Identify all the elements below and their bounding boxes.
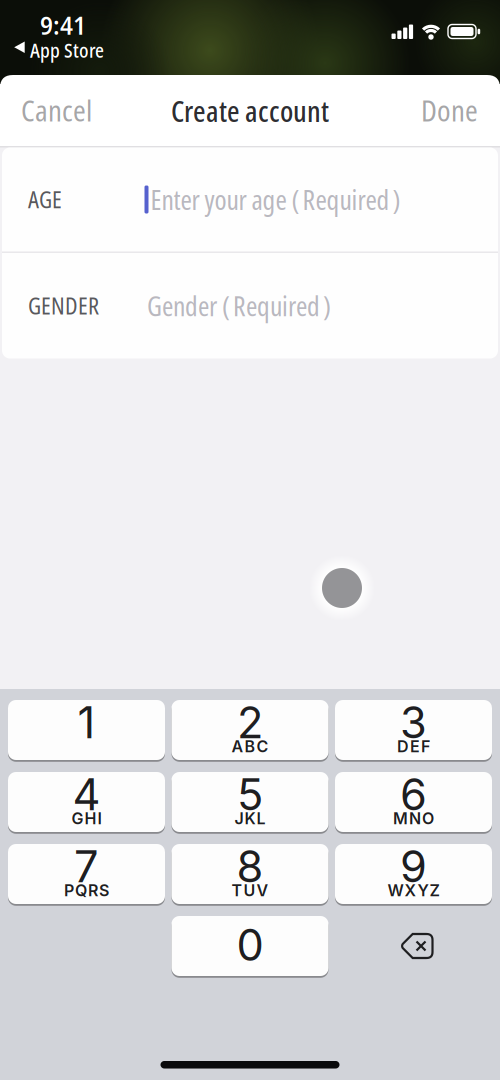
staticText: AGE — [28, 184, 62, 215]
button[interactable]: 5 — [171, 772, 328, 832]
staticText: 8 — [236, 840, 263, 893]
staticText: 7 — [74, 840, 99, 893]
button[interactable]: AGE — [2, 147, 498, 251]
staticText: Cancel — [21, 91, 92, 130]
staticText: 5 — [237, 768, 263, 821]
button[interactable]: Delete — [335, 916, 492, 976]
staticText: 0 — [236, 919, 263, 971]
button[interactable]: 7 — [8, 844, 165, 904]
button[interactable]: 3 — [335, 700, 492, 760]
staticText: 9:41 — [40, 7, 86, 42]
button[interactable]: App Store — [0, 38, 110, 58]
staticText: T U V — [231, 881, 268, 900]
staticText: GENDER — [28, 290, 99, 321]
staticText: Gender ( Required ) — [147, 287, 331, 324]
staticText: 9 — [400, 840, 427, 893]
staticText: D E F — [397, 737, 430, 756]
button[interactable]: 0 — [171, 916, 328, 976]
staticText: G H I — [71, 809, 101, 828]
staticText: 3 — [400, 696, 427, 749]
staticText: J K L — [234, 809, 265, 828]
staticText: 2 — [237, 696, 263, 749]
staticText: Create account — [171, 90, 329, 130]
staticText: 1 — [77, 696, 95, 749]
staticText: Done — [421, 91, 478, 130]
button[interactable]: 9 — [335, 844, 492, 904]
button[interactable]: 4 — [8, 772, 165, 832]
button[interactable]: GENDER — [2, 253, 498, 358]
staticText: App Store — [30, 37, 104, 63]
staticText: P Q R S — [64, 881, 109, 900]
staticText: M N O — [393, 809, 434, 828]
staticText: Enter your age ( Required ) — [150, 181, 400, 218]
button[interactable]: Cancel — [21, 91, 92, 130]
staticText: 4 — [72, 768, 100, 821]
button[interactable]: 1 — [8, 700, 165, 760]
button[interactable]: Done — [421, 91, 478, 130]
button[interactable]: 6 — [335, 772, 492, 832]
button[interactable]: 8 — [171, 844, 328, 904]
button[interactable]: 2 — [171, 700, 328, 760]
staticText: A B C — [231, 737, 268, 756]
staticText: 6 — [400, 768, 427, 821]
staticText: W X Y Z — [387, 881, 439, 900]
